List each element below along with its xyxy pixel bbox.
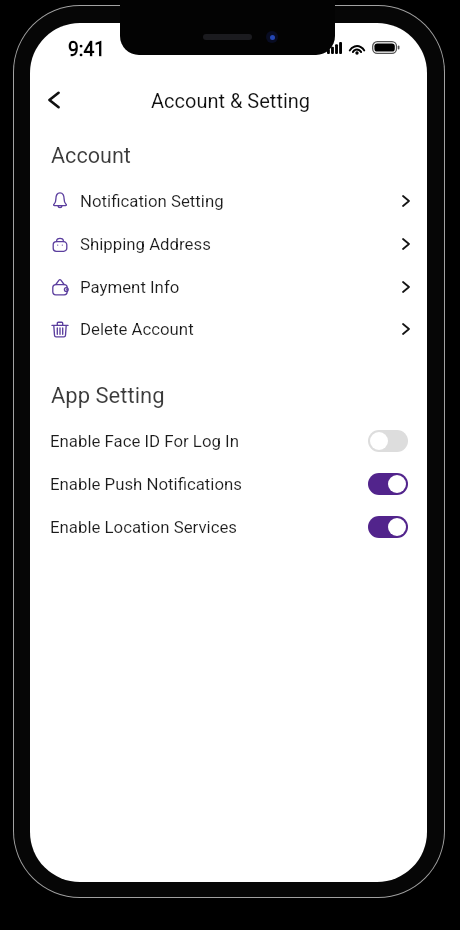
staticText: 9:41 [68,38,106,61]
button[interactable]: Shipping Address [38,223,420,265]
button[interactable]: Enable Push Notifications [38,463,420,505]
staticText: Shipping Address [80,234,211,254]
staticText: Account [51,143,131,168]
staticText: Payment Info [80,277,180,297]
button[interactable]: Enable Location Services [38,506,420,548]
button[interactable]: Enable Face ID For Log In [38,420,420,462]
staticText: Enable Location Services [50,517,238,537]
staticText: App Setting [51,383,165,409]
staticText: Delete Account [80,319,194,339]
staticText: Enable Face ID For Log In [50,431,239,451]
staticText: Notification Setting [80,191,224,211]
button[interactable]: Delete Account [38,308,420,350]
button[interactable]: Payment Info [38,266,420,308]
staticText: Enable Push Notifications [50,474,242,494]
button[interactable]: Back [38,84,70,116]
staticText: Account & Setting [151,89,311,112]
button[interactable]: Notification Setting [38,180,420,222]
